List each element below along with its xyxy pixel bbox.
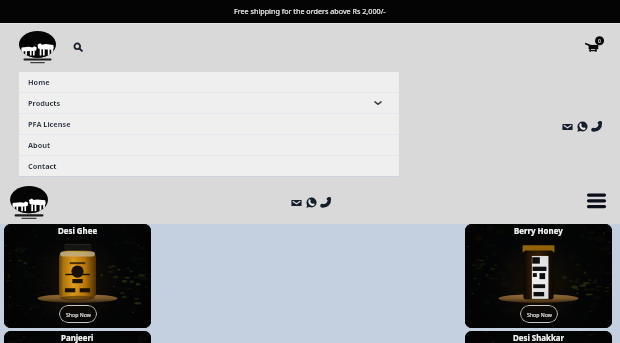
button[interactable]: Panjeeri: [4, 331, 151, 343]
button[interactable]: Shopping cart: [584, 34, 605, 55]
button[interactable]: About: [19, 135, 399, 155]
button[interactable]: Email us: [291, 198, 302, 208]
staticText: Home: [28, 77, 50, 87]
button[interactable]: WhatsApp: [577, 121, 588, 132]
button[interactable]: Email us: [562, 122, 573, 132]
button[interactable]: Call us: [591, 121, 602, 132]
button[interactable]: Call us: [320, 197, 331, 208]
button[interactable]: Products: [19, 93, 399, 113]
button[interactable]: Shop Now: [520, 305, 558, 323]
staticText: Contact: [28, 161, 57, 171]
button[interactable]: The Dairyland home: [19, 31, 56, 76]
button[interactable]: Menu: [587, 192, 606, 210]
staticText: Berry Honey: [514, 226, 563, 237]
button[interactable]: Shop Now: [59, 305, 97, 323]
button[interactable]: Desi Ghee: [4, 224, 151, 328]
staticText: PFA License: [28, 119, 71, 129]
button[interactable]: The Dairyland home: [10, 186, 48, 232]
staticText: Shop Now: [66, 311, 91, 318]
staticText: Desi Shakkar: [513, 333, 565, 343]
button[interactable]: WhatsApp: [306, 197, 317, 208]
staticText: Free shipping for the orders above Rs 2,…: [234, 6, 386, 16]
button[interactable]: Home: [19, 72, 399, 92]
staticText: Desi Ghee: [58, 226, 98, 237]
staticText: Shop Now: [527, 311, 552, 318]
button[interactable]: Contact: [19, 156, 399, 176]
staticText: Products: [28, 98, 61, 108]
button[interactable]: PFA License: [19, 114, 399, 134]
staticText: 0: [598, 38, 601, 45]
staticText: Panjeeri: [61, 333, 94, 343]
button[interactable]: Search: [72, 41, 84, 53]
staticText: About: [28, 140, 51, 150]
button[interactable]: Berry Honey: [465, 224, 612, 328]
button[interactable]: Desi Shakkar: [465, 331, 612, 343]
